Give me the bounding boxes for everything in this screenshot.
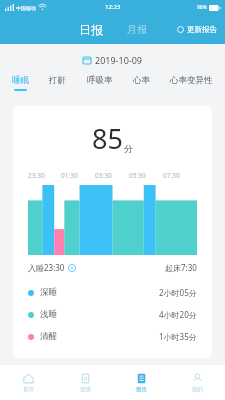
staticText: 月报 — [127, 23, 147, 36]
button[interactable]: 说明 — [68, 264, 76, 272]
staticText: 03:30 — [95, 171, 112, 180]
staticText: 连接 — [80, 386, 91, 393]
staticText: 报告 — [136, 386, 147, 393]
staticText: 更新报告 — [187, 25, 217, 34]
staticText: 01:30 — [61, 171, 78, 180]
staticText: 入睡23:30 — [28, 262, 65, 273]
button[interactable]: 心率变异性 — [166, 72, 217, 92]
button[interactable]: 浅睡 — [13, 309, 212, 320]
button[interactable]: 我的 — [169, 365, 225, 400]
staticText: 23:30 — [28, 171, 45, 180]
staticText: 12:23 — [105, 3, 121, 11]
button[interactable]: 日报 — [72, 19, 110, 40]
button[interactable]: 清醒 — [13, 331, 212, 342]
staticText: 85 — [92, 120, 123, 157]
button[interactable]: 心率 — [129, 72, 154, 92]
button[interactable]: 更新报告 — [169, 21, 225, 38]
staticText: 呼吸率 — [87, 75, 113, 86]
staticText: 分 — [124, 143, 133, 154]
button[interactable]: 月报 — [120, 20, 154, 39]
button[interactable]: 首页 — [0, 365, 57, 400]
staticText: 1小时35分 — [159, 331, 197, 342]
staticText: 我的 — [192, 386, 203, 393]
staticText: 中国移动 — [16, 5, 36, 11]
staticText: 2小时05分 — [159, 287, 197, 298]
staticText: 2019-10-09 — [95, 54, 142, 66]
button[interactable]: 打鼾 — [45, 72, 70, 92]
staticText: 07:30 — [163, 171, 180, 180]
button[interactable]: 2019-10-09 — [0, 54, 225, 66]
button[interactable]: 睡眠 — [8, 72, 33, 94]
staticText: 清醒 — [40, 331, 57, 342]
button[interactable]: 呼吸率 — [83, 72, 117, 92]
staticText: 心率 — [133, 75, 150, 86]
staticText: 深睡 — [40, 287, 57, 298]
staticText: 起床7:30 — [165, 262, 197, 273]
staticText: 日报 — [79, 22, 103, 37]
button[interactable]: 报告 — [113, 365, 169, 400]
staticText: 浅睡 — [40, 309, 57, 320]
staticText: 98% — [197, 4, 207, 11]
staticText: 4小时20分 — [159, 309, 197, 320]
staticText: 睡眠 — [12, 75, 29, 86]
staticText: 05:30 — [129, 171, 146, 180]
staticText: 首页 — [23, 386, 34, 393]
staticText: 心率变异性 — [170, 75, 213, 86]
button[interactable]: 连接 — [57, 365, 113, 400]
staticText: 打鼾 — [49, 75, 66, 86]
button[interactable]: 深睡 — [13, 287, 212, 298]
